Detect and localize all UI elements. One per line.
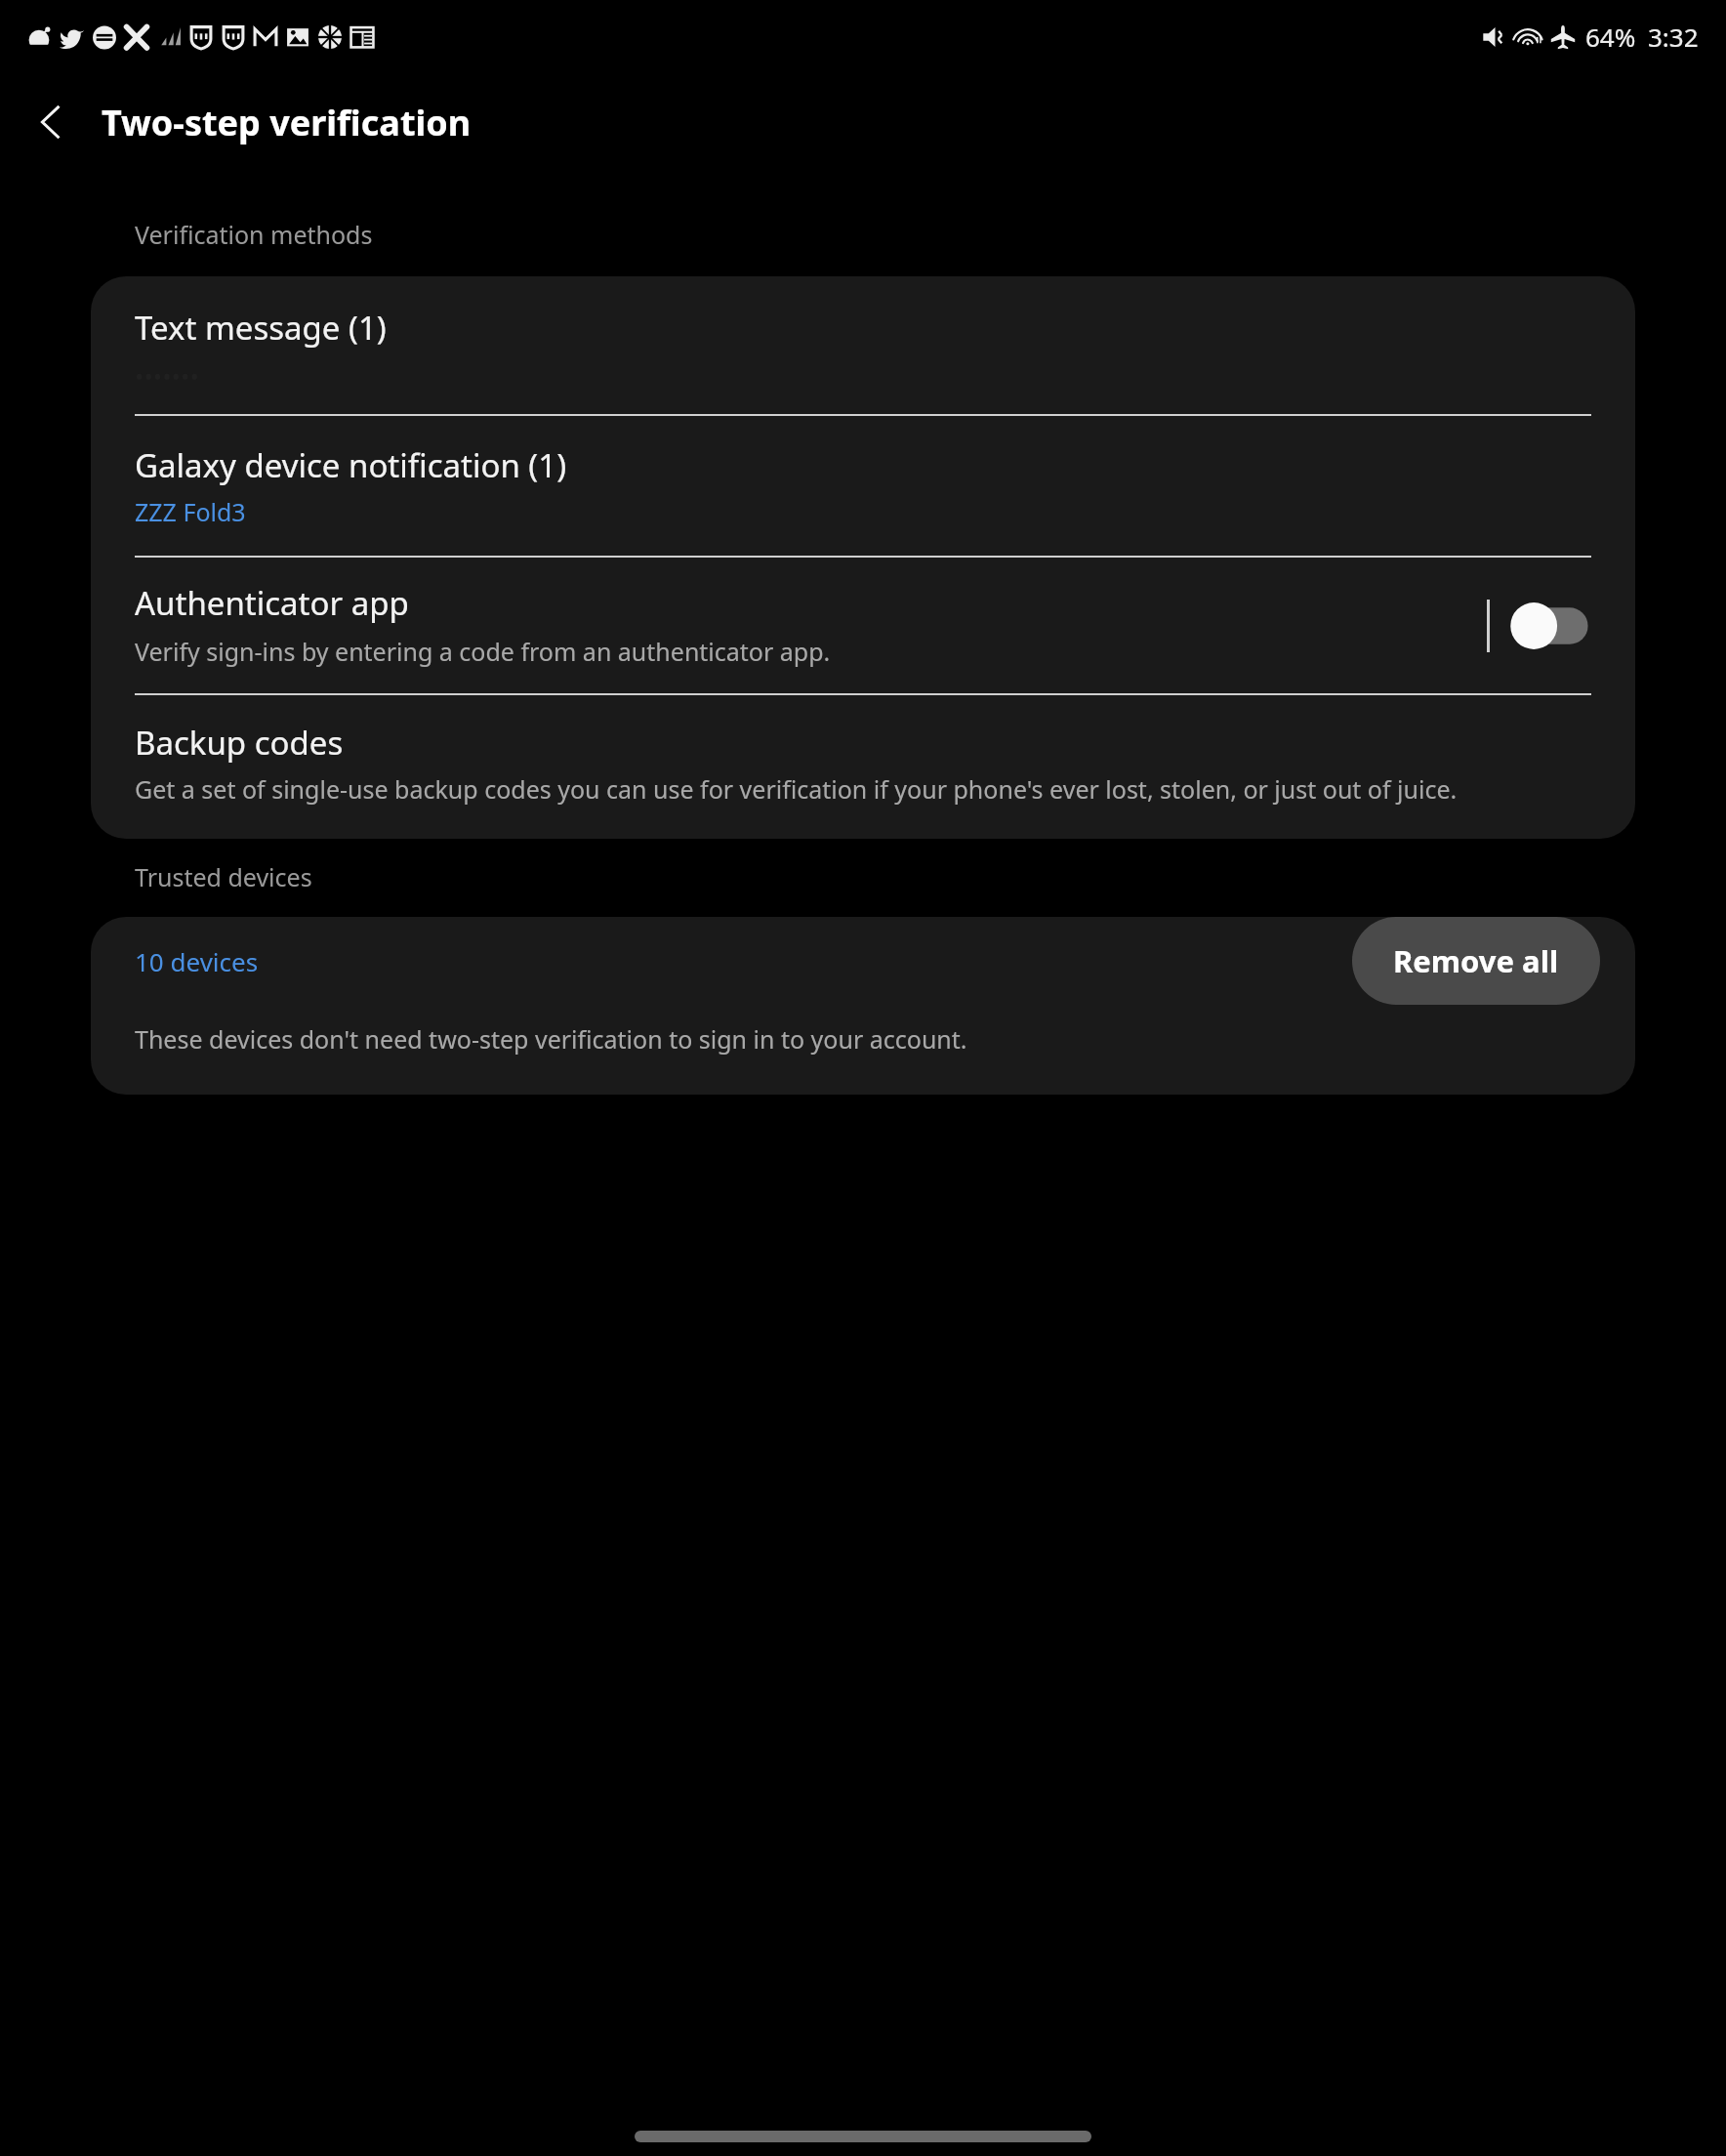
button[interactable]: Galaxy device notification (1) [91, 416, 1635, 558]
staticText: ZZZ Fold3 [135, 495, 246, 528]
staticText: Two-step verification [102, 99, 472, 146]
staticText: Backup codes [135, 721, 344, 765]
staticText: Authenticator app [135, 581, 409, 625]
staticText: Text message (1) [135, 306, 387, 350]
staticText: 3:32 [1648, 20, 1699, 54]
button[interactable]: Text message (1) [91, 276, 1635, 416]
staticText: Get a set of single-use backup codes you… [135, 772, 1458, 806]
staticText: Remove all [1393, 940, 1559, 981]
button[interactable]: Authenticator app [91, 558, 1635, 695]
button[interactable]: 10 devices [135, 944, 259, 978]
button[interactable]: Back [18, 88, 86, 156]
staticText: Verify sign-ins by entering a code from … [135, 635, 831, 668]
staticText: 64% [1585, 20, 1636, 54]
button[interactable]: Remove all [1352, 917, 1600, 1005]
staticText: Galaxy device notification (1) [135, 443, 567, 487]
button[interactable] [1507, 601, 1591, 651]
staticText: Verification methods [135, 218, 373, 251]
button[interactable]: Backup codes [91, 695, 1635, 839]
staticText: Trusted devices [135, 860, 312, 893]
staticText: These devices don't need two-step verifi… [135, 1022, 967, 1056]
